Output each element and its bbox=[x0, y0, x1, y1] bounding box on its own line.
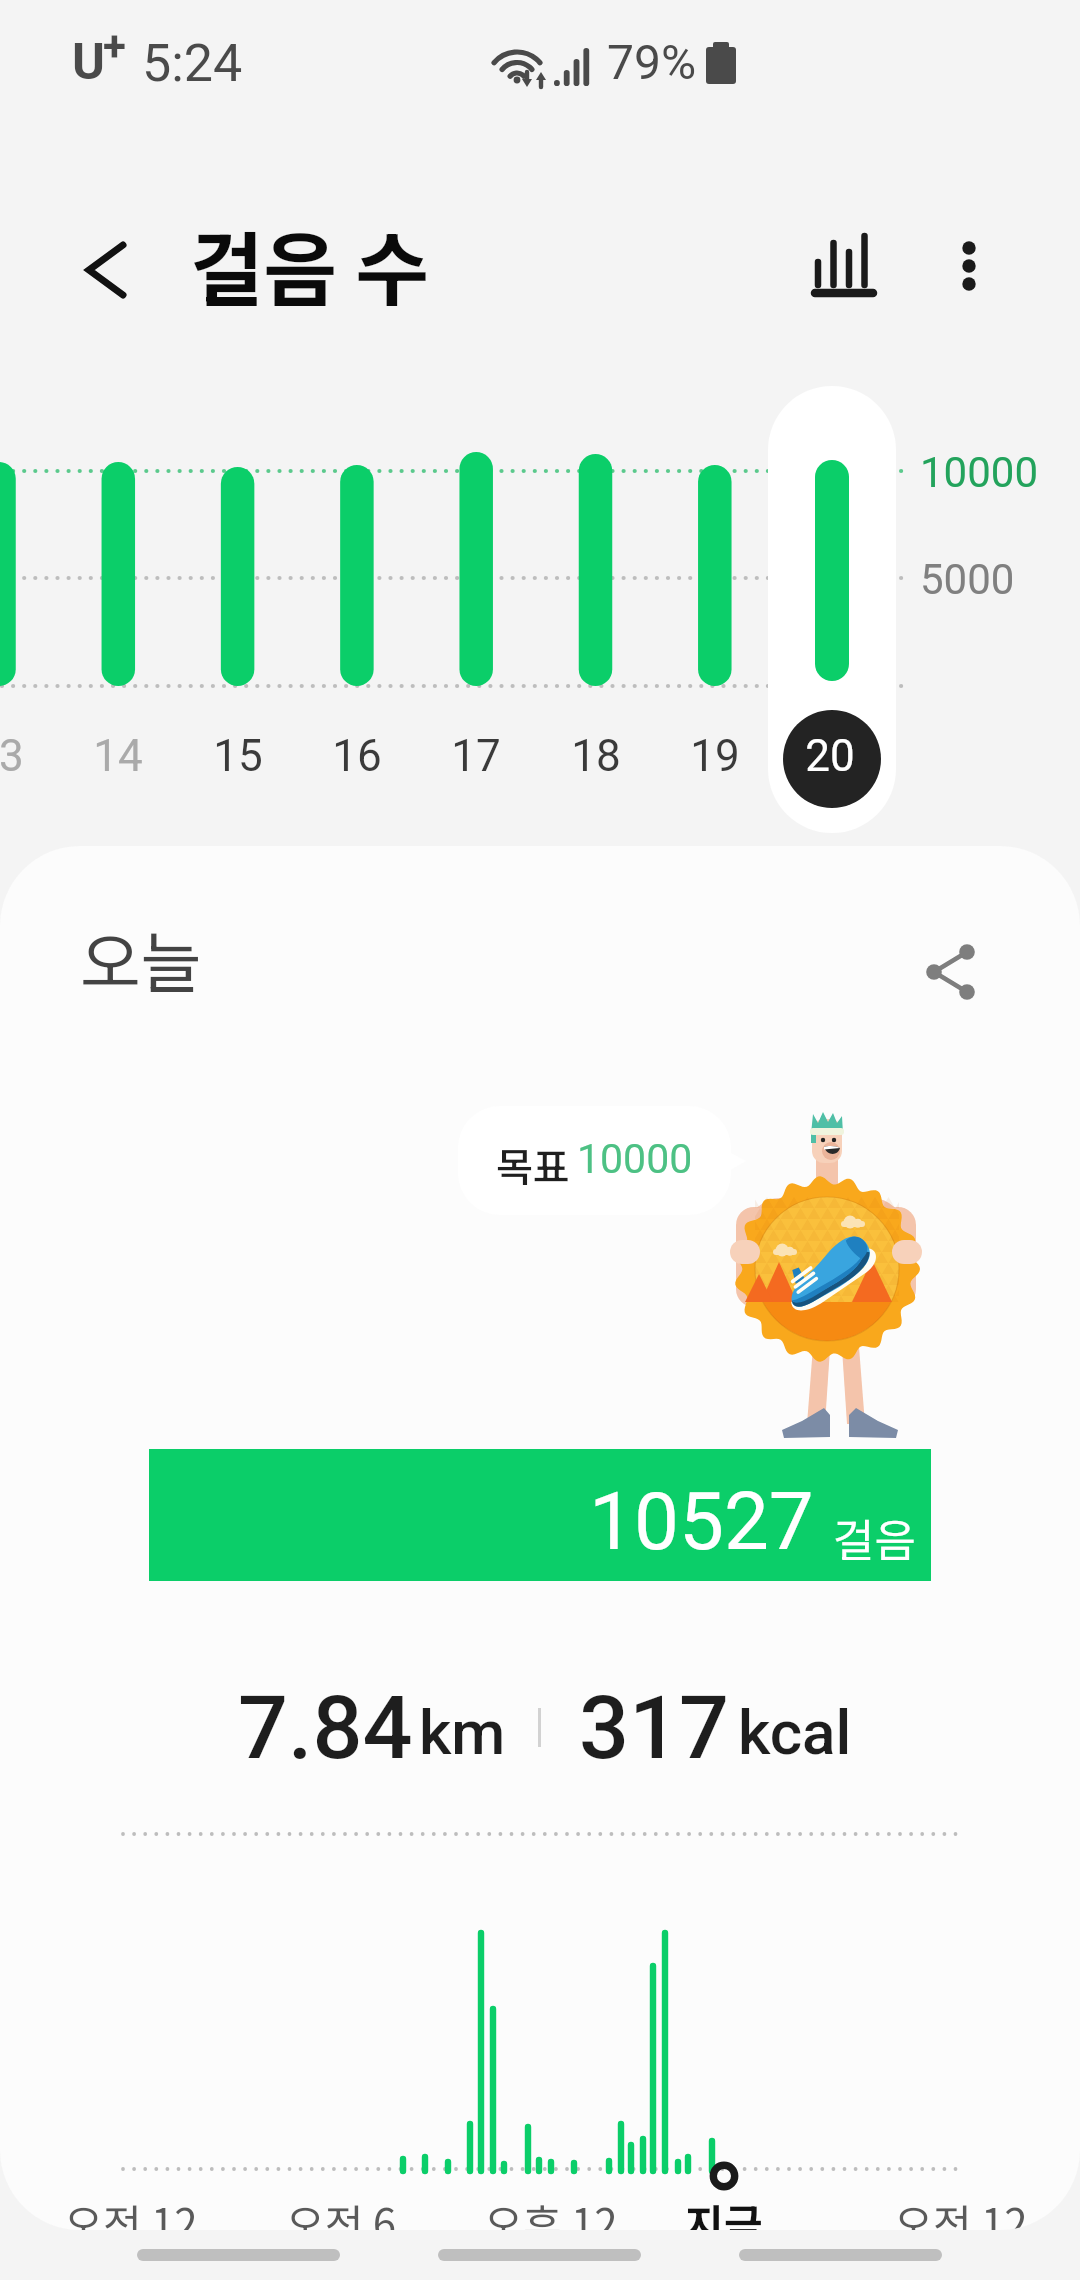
button[interactable]: Back bbox=[739, 2249, 942, 2261]
staticText: U bbox=[72, 33, 105, 92]
staticText: 10000 bbox=[920, 448, 1039, 497]
staticText: 13 bbox=[0, 730, 39, 782]
staticText: 지금 bbox=[574, 2191, 874, 2230]
staticText: 오후 12 bbox=[401, 2191, 701, 2230]
staticText: 오전 6 bbox=[191, 2191, 491, 2230]
staticText: + bbox=[103, 22, 126, 71]
button[interactable]: Home bbox=[438, 2249, 641, 2261]
staticText: 10000 bbox=[577, 1135, 693, 1183]
button[interactable]: Back bbox=[58, 222, 154, 318]
staticText: 14 bbox=[78, 730, 158, 782]
staticText: 걸음 수 bbox=[190, 206, 429, 322]
staticText: 7.84 bbox=[238, 1676, 413, 1779]
staticText: 5000 bbox=[920, 555, 1015, 604]
staticText: 오전 12 bbox=[811, 2191, 1080, 2230]
button[interactable]: Chart bbox=[796, 218, 892, 314]
staticText: 20 bbox=[790, 730, 870, 782]
staticText: 5:24 bbox=[142, 33, 243, 94]
button[interactable]: 10527 bbox=[149, 1449, 931, 1581]
staticText: 79% bbox=[607, 34, 697, 90]
staticText: 19 bbox=[675, 730, 755, 782]
button[interactable]: More options bbox=[921, 218, 1017, 314]
staticText: 17 bbox=[436, 730, 516, 782]
staticText: 걸음 bbox=[833, 1505, 916, 1570]
staticText: kcal bbox=[738, 1696, 852, 1769]
button[interactable]: Share bbox=[900, 920, 1004, 1024]
staticText: 317 bbox=[579, 1676, 730, 1779]
button[interactable] bbox=[768, 386, 896, 833]
button[interactable]: Recents bbox=[137, 2249, 340, 2261]
staticText: 오늘 bbox=[80, 910, 202, 1006]
staticText: 10527 bbox=[589, 1475, 814, 1569]
staticText: 18 bbox=[556, 730, 636, 782]
staticText: 목표 bbox=[496, 1136, 570, 1194]
staticText: 15 bbox=[198, 730, 278, 782]
staticText: km bbox=[419, 1696, 506, 1769]
staticText: 오전 12 bbox=[0, 2191, 281, 2230]
staticText: 16 bbox=[317, 730, 397, 782]
